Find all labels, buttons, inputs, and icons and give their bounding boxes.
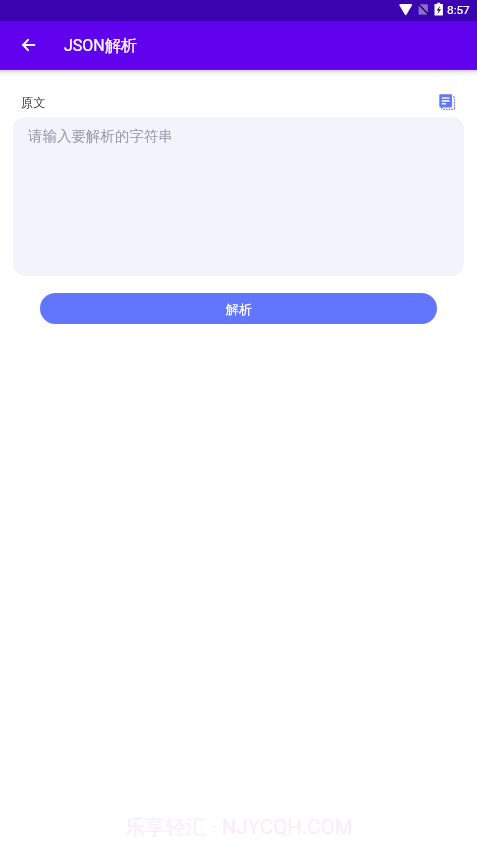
staticText: 乐享轻汇 · NJYCQH.COM <box>124 814 353 840</box>
staticText: 解析 <box>226 301 252 317</box>
button[interactable]: Paste <box>434 89 460 115</box>
button[interactable]: 解析 <box>40 293 437 324</box>
staticText: JSON解析 <box>64 36 137 56</box>
staticText: 8:57 <box>447 3 470 17</box>
staticText: 原文 <box>21 95 46 110</box>
staticText: 请输入要解析的字符串 <box>28 127 173 145</box>
button[interactable]: Back <box>10 28 46 64</box>
button[interactable]: 请输入要解析的字符串 <box>13 117 464 276</box>
